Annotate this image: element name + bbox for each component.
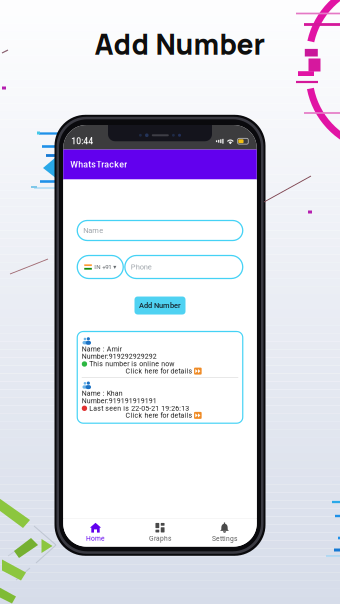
staticText: Name : Khan bbox=[82, 389, 123, 397]
staticText: Click here for details bbox=[125, 411, 192, 419]
staticText: WhatsTracker bbox=[70, 159, 127, 170]
staticText: 10:44 bbox=[71, 136, 93, 146]
staticText: Name : Amir bbox=[82, 345, 122, 353]
button[interactable]: Graphs bbox=[128, 519, 192, 546]
button[interactable]: Name : Amir bbox=[82, 336, 238, 374]
staticText: Add Number bbox=[94, 25, 265, 63]
button[interactable]: Home bbox=[63, 519, 128, 546]
staticText: Add Number bbox=[139, 301, 181, 310]
staticText: Settings bbox=[212, 535, 237, 543]
staticText: Home bbox=[86, 535, 105, 542]
staticText: Graphs bbox=[149, 534, 171, 542]
staticText: Number:919191919191 bbox=[82, 397, 157, 405]
staticText: Last seen is 22-05-21 19:26:13 bbox=[89, 404, 189, 412]
button[interactable]: Add Number bbox=[134, 296, 185, 314]
staticText: This number is online now bbox=[89, 360, 174, 368]
button[interactable]: Name : Khan bbox=[82, 380, 238, 419]
staticText: Number:919292929292 bbox=[82, 352, 157, 360]
staticText: Phone bbox=[131, 263, 152, 271]
staticText: IN +91 ▾ bbox=[94, 263, 116, 271]
button[interactable]: Settings bbox=[192, 518, 257, 547]
staticText: Name bbox=[83, 226, 103, 235]
staticText: Click here for details bbox=[125, 367, 192, 375]
